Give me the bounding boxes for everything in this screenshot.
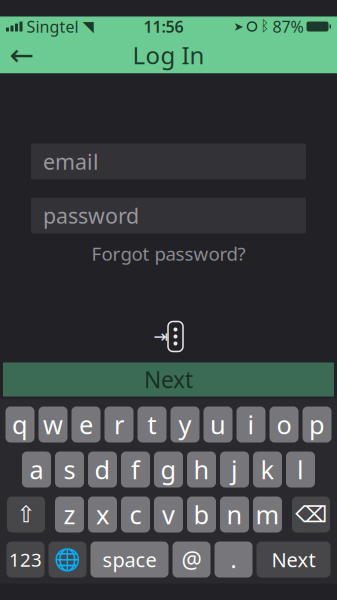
- staticText: x: [96, 498, 109, 531]
- staticText: password: [43, 201, 139, 230]
- staticText: w: [43, 408, 63, 441]
- staticText: email: [43, 147, 99, 176]
- button[interactable]: email: [31, 143, 306, 179]
- staticText: f: [131, 453, 140, 486]
- staticText: c: [129, 498, 141, 531]
- button[interactable]: i: [236, 406, 265, 442]
- staticText: m: [255, 498, 279, 531]
- staticText: s: [63, 453, 75, 486]
- button[interactable]: j: [220, 451, 249, 487]
- button[interactable]: y: [170, 406, 199, 442]
- staticText: 11:56: [143, 16, 183, 37]
- button[interactable]: k: [253, 451, 282, 487]
- staticText: p: [309, 408, 325, 441]
- staticText: @: [181, 544, 201, 574]
- button[interactable]: .: [214, 541, 252, 577]
- staticText: 🌐: [54, 547, 81, 572]
- staticText: Forgot password?: [91, 241, 245, 266]
- button[interactable]: w: [38, 406, 67, 442]
- button[interactable]: Forgot password?: [91, 242, 245, 264]
- button[interactable]: z: [55, 496, 84, 532]
- button[interactable]: m: [253, 496, 282, 532]
- staticText: e: [79, 408, 93, 441]
- button[interactable]: g: [154, 451, 183, 487]
- button[interactable]: ⇧: [7, 496, 45, 532]
- staticText: z: [63, 498, 75, 531]
- button[interactable]: Back: [0, 36, 44, 73]
- staticText: b: [193, 498, 209, 531]
- button[interactable]: v: [154, 496, 183, 532]
- staticText: .: [230, 544, 236, 574]
- staticText: n: [226, 498, 242, 531]
- staticText: q: [12, 408, 28, 441]
- staticText: 87%: [272, 16, 303, 37]
- button[interactable]: space: [90, 541, 168, 577]
- staticText: y: [178, 408, 191, 441]
- button[interactable]: 🌐: [48, 541, 86, 577]
- staticText: ◥: [82, 18, 93, 35]
- staticText: g: [160, 453, 176, 486]
- button[interactable]: q: [5, 406, 34, 442]
- staticText: ⇥: [153, 327, 168, 346]
- staticText: l: [297, 453, 304, 486]
- staticText: o: [276, 408, 291, 441]
- staticText: ⌫: [295, 502, 327, 527]
- button[interactable]: Next: [3, 362, 334, 396]
- button[interactable]: p: [302, 406, 331, 442]
- button[interactable]: c: [121, 496, 150, 532]
- staticText: Singtel: [26, 16, 78, 37]
- button[interactable]: h: [187, 451, 216, 487]
- staticText: Log In: [132, 39, 204, 71]
- button[interactable]: b: [187, 496, 216, 532]
- button[interactable]: s: [55, 451, 84, 487]
- button[interactable]: l: [286, 451, 315, 487]
- button[interactable]: o: [269, 406, 298, 442]
- button[interactable]: a: [22, 451, 51, 487]
- staticText: ←: [9, 38, 34, 72]
- staticText: v: [162, 498, 175, 531]
- button[interactable]: r: [104, 406, 133, 442]
- button[interactable]: 123: [6, 541, 44, 577]
- staticText: r: [114, 408, 124, 441]
- staticText: space: [102, 546, 156, 573]
- staticText: t: [147, 408, 156, 441]
- button[interactable]: f: [121, 451, 150, 487]
- staticText: ⇧: [16, 502, 35, 527]
- staticText: u: [210, 408, 226, 441]
- button[interactable]: ⌫: [292, 496, 330, 532]
- staticText: h: [193, 453, 209, 486]
- staticText: k: [260, 453, 274, 486]
- staticText: j: [231, 453, 238, 486]
- button[interactable]: u: [203, 406, 232, 442]
- button[interactable]: t: [137, 406, 166, 442]
- button[interactable]: password: [31, 197, 306, 233]
- staticText: d: [94, 453, 110, 486]
- staticText: a: [29, 453, 43, 486]
- button[interactable]: @: [172, 541, 210, 577]
- button[interactable]: e: [71, 406, 100, 442]
- staticText: ➤: [233, 20, 243, 33]
- staticText: Next: [144, 364, 193, 394]
- staticText: 123: [9, 547, 42, 572]
- staticText: ᛒ: [260, 19, 269, 34]
- button[interactable]: Next: [256, 541, 330, 577]
- staticText: Next: [271, 546, 315, 573]
- button[interactable]: n: [220, 496, 249, 532]
- button[interactable]: d: [88, 451, 117, 487]
- staticText: i: [247, 408, 254, 441]
- button[interactable]: x: [88, 496, 117, 532]
